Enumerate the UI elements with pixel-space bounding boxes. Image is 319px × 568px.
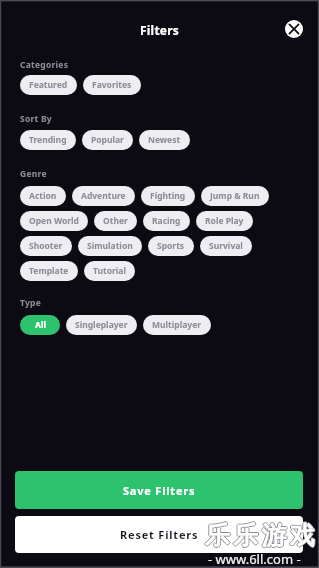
button[interactable]: Jump & Run [201, 186, 269, 206]
staticText: Singleplayer [75, 319, 128, 331]
staticText: 乐乐游戏 [204, 520, 317, 551]
staticText: Fighting [150, 190, 186, 202]
staticText: Multiplayer [152, 319, 202, 331]
button[interactable]: Survival [200, 236, 252, 256]
staticText: Trending [29, 134, 67, 146]
staticText: Template [29, 265, 69, 277]
button[interactable]: Singleplayer [66, 315, 137, 335]
button[interactable]: Simulation [78, 236, 142, 256]
button[interactable]: Sports [148, 236, 194, 256]
button[interactable]: Close [285, 20, 303, 38]
button[interactable]: Favorites [83, 75, 141, 95]
button[interactable]: Newest [139, 130, 190, 150]
staticText: Popular [91, 134, 124, 146]
staticText: Filters [0, 22, 319, 38]
staticText: Sports [157, 240, 185, 252]
staticText: Shooter [29, 240, 63, 252]
staticText: Genre [20, 168, 47, 180]
button[interactable]: Featured [20, 75, 77, 95]
staticText: Reset Filters [120, 527, 199, 542]
staticText: Tutorial [93, 265, 126, 277]
staticText: All [35, 319, 46, 331]
button[interactable]: Tutorial [84, 261, 135, 281]
button[interactable]: Adventure [72, 186, 135, 206]
staticText: Action [29, 190, 57, 202]
staticText: Save Filters [123, 483, 196, 498]
staticText: Type [20, 297, 42, 309]
button[interactable]: Fighting [141, 186, 195, 206]
staticText: Open World [29, 215, 79, 227]
button[interactable]: Save Filters [15, 471, 303, 509]
staticText: Simulation [87, 240, 133, 252]
button[interactable]: Template [20, 261, 78, 281]
button[interactable]: Multiplayer [143, 315, 211, 335]
button[interactable]: Other [94, 211, 137, 231]
staticText: 乐乐游戏 [206, 520, 319, 551]
button[interactable]: Open World [20, 211, 88, 231]
staticText: 乐乐游戏 [205, 520, 318, 551]
button[interactable]: Role Play [196, 211, 253, 231]
button[interactable]: Trending [20, 130, 76, 150]
staticText: Other [103, 215, 128, 227]
staticText: Adventure [81, 190, 126, 202]
staticText: Role Play [205, 215, 244, 227]
staticText: Featured [29, 79, 68, 91]
staticText: Survival [209, 240, 243, 252]
staticText: Favorites [92, 79, 132, 91]
staticText: Newest [148, 134, 181, 146]
staticText: 乐乐游戏 [205, 521, 318, 552]
button[interactable]: All [20, 315, 60, 335]
staticText: - www.6ll.com - [208, 550, 301, 568]
staticText: Jump & Run [210, 190, 260, 202]
button[interactable]: Racing [143, 211, 190, 231]
button[interactable]: Popular [82, 130, 133, 150]
staticText: 乐乐游戏 [205, 519, 318, 550]
staticText: Sort By [20, 113, 52, 125]
staticText: Categories [20, 59, 69, 71]
button[interactable]: Action [20, 186, 66, 206]
staticText: Racing [152, 215, 181, 227]
button[interactable]: Reset Filters [15, 516, 303, 553]
button[interactable]: Shooter [20, 236, 72, 256]
